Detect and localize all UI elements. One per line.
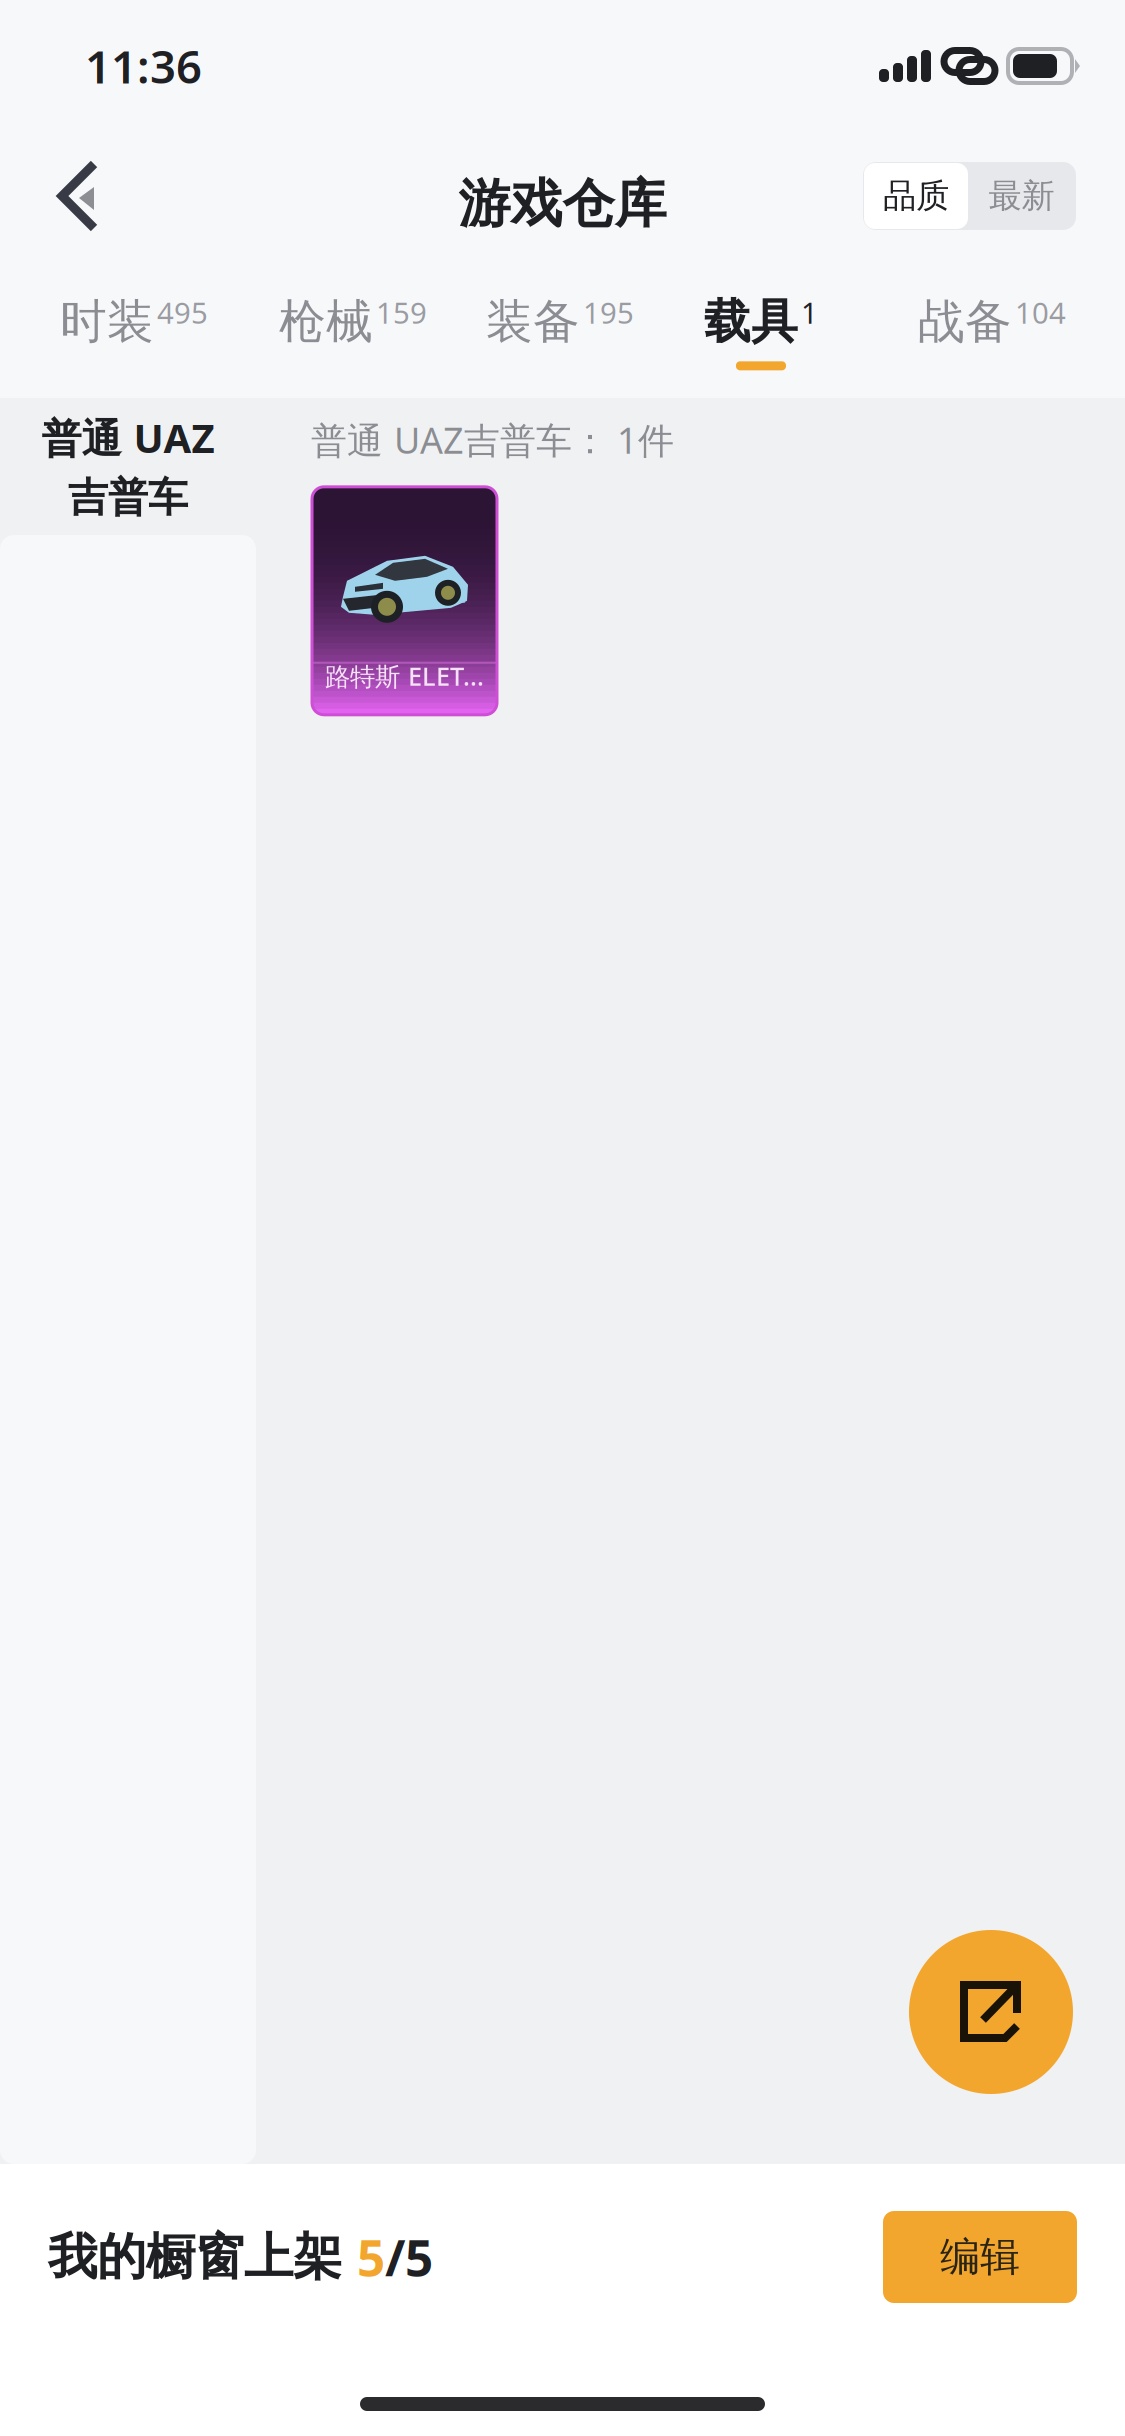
button[interactable]: 普通 UAZ (0, 398, 256, 535)
staticText: 时装 (60, 293, 154, 350)
staticText: 普通 UAZ (41, 411, 214, 464)
staticText: 路特斯 ELET... (325, 659, 484, 693)
staticText: 战备 (918, 293, 1012, 350)
staticText: 最新 (988, 175, 1054, 216)
staticText: 1 (801, 293, 818, 332)
staticText: 普通 UAZ吉普车： 1件 (311, 416, 674, 464)
button[interactable]: 枪械 (279, 280, 427, 398)
staticText: 159 (376, 293, 427, 332)
staticText: 11:36 (85, 36, 202, 96)
button[interactable]: 装备 (486, 280, 634, 398)
button[interactable]: 载具 (704, 280, 818, 398)
staticText: 195 (583, 293, 634, 332)
staticText: 游戏仓库 (458, 172, 666, 236)
staticText: 104 (1015, 293, 1066, 332)
staticText: 495 (157, 293, 208, 332)
button[interactable]: Back (18, 146, 138, 246)
button[interactable]: 路特斯 ELET... (312, 487, 497, 715)
staticText: 载具 (704, 293, 798, 350)
staticText: /5 (385, 2224, 433, 2290)
staticText: 装备 (486, 293, 580, 350)
button[interactable]: 最新 (968, 163, 1075, 229)
staticText: 5 (357, 2224, 385, 2290)
staticText: 我的橱窗上架 (48, 2227, 357, 2287)
button[interactable]: Share (909, 1930, 1073, 2094)
button[interactable]: 编辑 (883, 2211, 1077, 2303)
staticText: 编辑 (940, 2232, 1020, 2281)
staticText: 枪械 (279, 293, 373, 350)
staticText: 吉普车 (68, 473, 188, 522)
button[interactable]: 品质 (864, 163, 968, 229)
staticText: 品质 (883, 175, 949, 216)
button[interactable]: 战备 (918, 280, 1066, 398)
button[interactable]: 时装 (60, 280, 208, 398)
